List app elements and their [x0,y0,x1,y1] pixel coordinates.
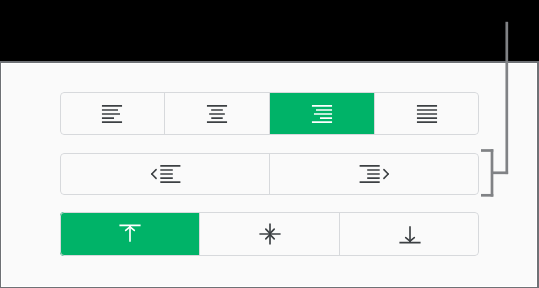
button[interactable]: Align right [270,92,374,135]
button[interactable]: Align bottom [340,212,479,256]
button[interactable]: Align top [60,212,199,256]
button[interactable]: Align center [165,92,269,135]
button[interactable]: Justify [375,92,479,135]
button[interactable]: Increase indent [270,153,479,195]
button[interactable]: Align left [60,92,164,135]
button[interactable]: Align middle [200,212,339,256]
button[interactable]: Decrease indent [60,153,269,195]
